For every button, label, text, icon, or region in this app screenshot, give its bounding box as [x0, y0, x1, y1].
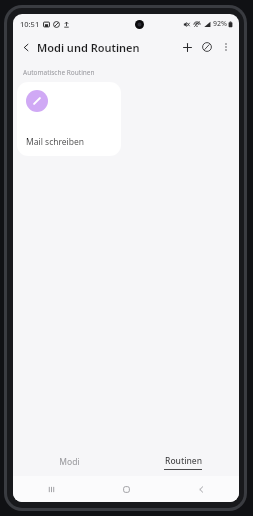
staticText: Modi und Routinen: [37, 40, 140, 55]
staticText: 10:51: [20, 19, 40, 29]
button[interactable]: Letzte Apps: [13, 476, 89, 502]
staticText: 92%: [213, 19, 227, 29]
button[interactable]: Weitere Optionen: [217, 38, 235, 56]
button[interactable]: Zurück: [17, 38, 35, 56]
button[interactable]: Modi: [13, 448, 126, 476]
button[interactable]: Zurück: [164, 476, 239, 502]
button[interactable]: Startbildschirm: [89, 476, 164, 502]
button[interactable]: Routinen: [126, 448, 239, 476]
staticText: Automatische Routinen: [23, 68, 95, 77]
button[interactable]: Mail schreiben: [17, 82, 121, 156]
staticText: Modi: [59, 456, 80, 468]
staticText: Mail schreiben: [26, 136, 85, 148]
button[interactable]: Entdecken: [198, 38, 216, 56]
button[interactable]: Hinzufügen: [178, 38, 196, 56]
staticText: Routinen: [165, 455, 202, 467]
